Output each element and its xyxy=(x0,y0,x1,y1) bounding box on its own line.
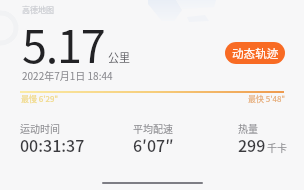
staticText: 最慢 6'29" xyxy=(21,93,59,105)
staticText: 最快 5'48" xyxy=(248,93,286,105)
staticText: 平均配速 xyxy=(133,121,173,135)
staticText: 6′07″ xyxy=(133,133,174,156)
staticText: 动态轨迹 xyxy=(232,45,279,62)
staticText: 热量 xyxy=(238,121,258,135)
staticText: 2022年7月1日 18:44 xyxy=(22,68,113,82)
staticText: 高德地图 xyxy=(22,4,54,16)
staticText: 运动时间 xyxy=(20,121,60,135)
staticText: 千卡 xyxy=(267,140,287,154)
staticText: 00:31:37 xyxy=(20,133,85,156)
staticText: 5.17 xyxy=(22,11,105,76)
button[interactable]: 动态轨迹 xyxy=(225,42,285,64)
staticText: 299 xyxy=(238,133,266,156)
staticText: 公里 xyxy=(108,49,130,65)
